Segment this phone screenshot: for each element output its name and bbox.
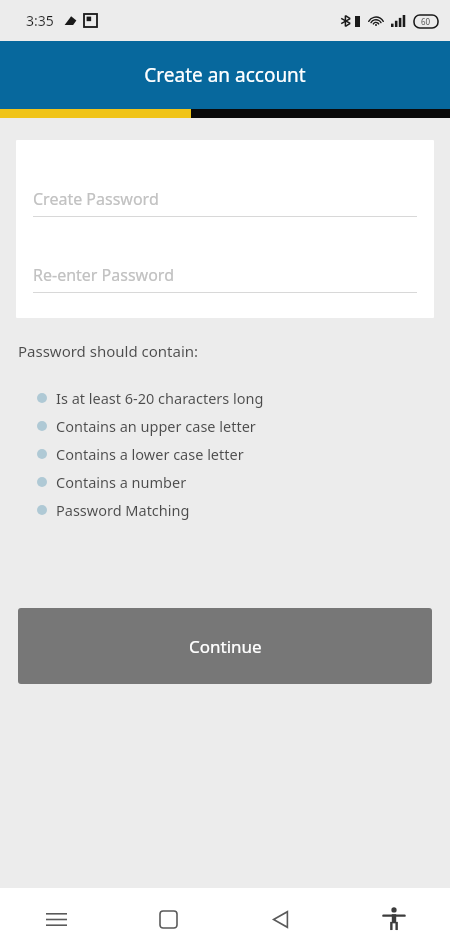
button[interactable]: Contains an upper case letter — [37, 412, 450, 440]
staticText: Contains a number — [56, 472, 187, 492]
button[interactable]: Accessibility — [337, 888, 450, 950]
button[interactable]: Contains a lower case letter — [37, 440, 450, 468]
staticText: Create Password — [33, 188, 159, 210]
staticText: Is at least 6-20 characters long — [56, 388, 264, 408]
button[interactable]: Is at least 6-20 characters long — [37, 384, 450, 412]
staticText: Continue — [189, 635, 262, 658]
button[interactable]: Password Matching — [37, 496, 450, 524]
button[interactable]: Create Password — [33, 188, 417, 217]
staticText: Create an account — [144, 62, 306, 88]
button[interactable]: Menu — [0, 888, 112, 950]
staticText: Contains an upper case letter — [56, 416, 256, 436]
staticText: Password Matching — [56, 500, 190, 520]
button[interactable]: Contains a number — [37, 468, 450, 496]
staticText: Re-enter Password — [33, 264, 174, 286]
staticText: 3:35 — [26, 11, 54, 30]
staticText: Contains a lower case letter — [56, 444, 244, 464]
button[interactable]: Home — [112, 888, 224, 950]
staticText: 60 — [421, 16, 431, 27]
button[interactable]: Continue — [18, 608, 432, 684]
staticText: Password should contain: — [18, 341, 199, 361]
button[interactable]: Back — [224, 888, 337, 950]
button[interactable]: Re-enter Password — [33, 264, 417, 293]
